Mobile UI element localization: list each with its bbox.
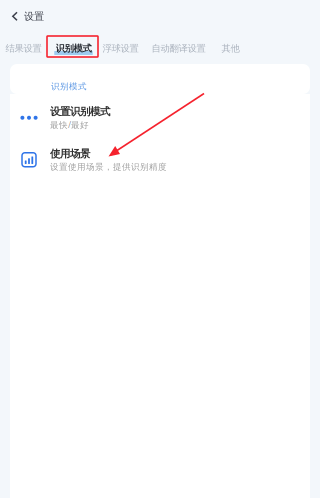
staticText: 使用场景	[50, 147, 90, 160]
staticText: 最快/最好	[50, 119, 89, 131]
button[interactable]: 识别模式	[55, 33, 91, 64]
staticText: 浮球设置	[102, 43, 138, 54]
button[interactable]: 结果设置	[5, 33, 41, 64]
staticText: 设置	[24, 10, 44, 23]
button[interactable]: 自动翻译设置	[152, 33, 204, 64]
button[interactable]: 浮球设置	[103, 33, 137, 64]
staticText: 其他	[221, 43, 239, 54]
button[interactable]: 使用场景	[10, 139, 310, 181]
button[interactable]: 设置	[0, 0, 56, 33]
staticText: 识别模式	[55, 43, 91, 54]
button[interactable]: 设置识别模式	[10, 97, 310, 139]
staticText: 自动翻译设置	[151, 43, 205, 54]
staticText: 识别模式	[51, 81, 87, 92]
staticText: 设置识别模式	[50, 105, 110, 118]
staticText: 设置使用场景，提供识别精度	[50, 161, 167, 172]
staticText: 结果设置	[5, 43, 41, 54]
button[interactable]: 其他	[221, 33, 239, 64]
